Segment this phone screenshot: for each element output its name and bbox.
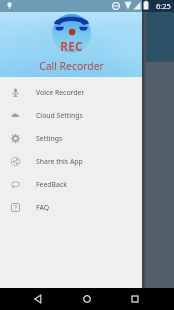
button[interactable]: FAQ	[0, 196, 142, 219]
staticText: Call Recorder	[39, 59, 104, 73]
button[interactable]: Home	[76, 288, 98, 310]
button[interactable]: Cloud Settings	[0, 104, 142, 127]
button[interactable]: Back	[27, 288, 49, 310]
staticText: FAQ	[36, 203, 50, 212]
button[interactable]: FeedBack	[0, 173, 142, 196]
staticText: FeedBack	[36, 180, 67, 189]
staticText: Share this App	[36, 157, 83, 166]
button[interactable]: Settings	[0, 127, 142, 150]
button[interactable]: Recents	[124, 288, 146, 310]
button[interactable]: Voice Recorder	[0, 81, 142, 104]
staticText: 6:25	[156, 1, 171, 11]
staticText: Voice Recorder	[36, 88, 85, 97]
button[interactable]: Share this App	[0, 150, 142, 173]
staticText: Cloud Settings	[36, 111, 83, 120]
staticText: REC	[60, 39, 83, 55]
staticText: Settings	[36, 134, 63, 143]
